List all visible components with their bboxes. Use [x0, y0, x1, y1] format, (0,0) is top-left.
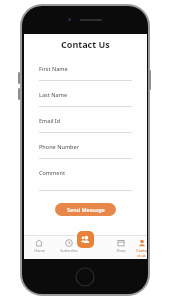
button[interactable]: Last Name: [39, 91, 132, 107]
button[interactable]: First Name: [39, 65, 132, 81]
staticText: Contact us: [136, 248, 147, 258]
button[interactable]: Subscribe: [54, 238, 84, 254]
button[interactable]: Phone Number: [39, 143, 132, 159]
staticText: Home: [34, 248, 45, 253]
staticText: Phone Number: [39, 143, 80, 150]
staticText: Last Name: [39, 91, 68, 98]
staticText: Contact Us: [61, 38, 110, 50]
button[interactable]: Send Message: [55, 203, 116, 216]
button[interactable]: Comment: [39, 169, 132, 191]
staticText: First Name: [39, 65, 68, 72]
button[interactable]: Home: [24, 238, 54, 254]
staticText: Subscribe: [60, 248, 78, 253]
staticText: Send Message: [67, 206, 105, 213]
button[interactable]: Email Id: [39, 117, 132, 133]
button[interactable]: Shop: [106, 238, 136, 254]
button[interactable]: Contact us: [136, 238, 147, 259]
button[interactable]: Home button: [75, 267, 95, 287]
staticText: Comment: [39, 169, 65, 176]
staticText: Shop: [116, 248, 126, 253]
button[interactable]: Contacts: [77, 231, 94, 248]
staticText: Email Id: [39, 117, 61, 124]
